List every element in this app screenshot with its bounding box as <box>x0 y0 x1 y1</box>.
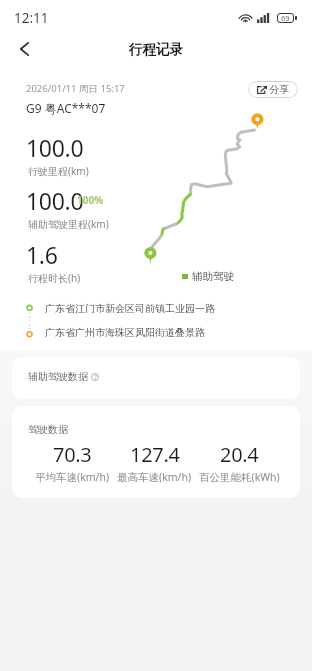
staticText: 70.3 <box>53 441 92 468</box>
staticText: 最高车速(km/h) <box>117 470 192 484</box>
staticText: 辅助驾驶里程(km) <box>28 217 109 231</box>
staticText: 100.0 <box>26 185 84 216</box>
staticText: ? <box>94 373 97 381</box>
staticText: 2026/01/11 周日 15:17 <box>26 82 125 95</box>
staticText: 行程时长(h) <box>28 271 81 285</box>
button[interactable]: 辅助驾驶数据 <box>12 357 300 399</box>
staticText: 20.4 <box>220 441 259 468</box>
staticText: 辅助驾驶数据 <box>28 370 88 383</box>
staticText: 辅助驾驶 <box>192 270 234 283</box>
staticText: 广东省广州市海珠区凤阳街道叠景路 <box>45 326 205 339</box>
staticText: 行程记录 <box>129 41 183 58</box>
staticText: G9 粤AC***07 <box>26 100 106 116</box>
staticText: 100.0 <box>26 132 84 163</box>
staticText: 广东省江门市新会区司前镇工业园一路 <box>45 302 215 315</box>
staticText: 平均车速(km/h) <box>35 470 110 484</box>
staticText: 分享 <box>269 83 289 96</box>
staticText: 12:11 <box>14 9 49 27</box>
staticText: 1.6 <box>26 239 58 270</box>
staticText: 行驶里程(km) <box>28 164 89 178</box>
button[interactable]: Back <box>8 32 41 65</box>
staticText: 百公里能耗(kWh) <box>199 470 280 484</box>
staticText: 69 <box>281 13 290 23</box>
staticText: 驾驶数据 <box>28 423 68 436</box>
staticText: 100% <box>77 193 104 207</box>
button[interactable]: 分享 <box>248 81 298 98</box>
staticText: 127.4 <box>130 441 180 468</box>
